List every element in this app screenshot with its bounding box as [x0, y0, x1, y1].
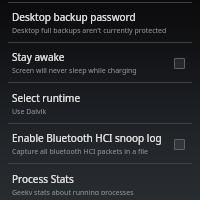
button[interactable]: Enable Bluetooth HCI snoop log [0, 126, 200, 162]
button[interactable]: Desktop backup password [0, 5, 200, 41]
staticText: Desktop full backups aren't currently pr… [12, 26, 167, 36]
staticText: Geeky stats about running processes [12, 188, 134, 195]
staticText: Process Stats [12, 172, 74, 186]
button[interactable]: Toggle Enable Bluetooth HCI snoop log [168, 139, 190, 150]
button[interactable]: Select runtime [0, 86, 200, 122]
staticText: Desktop backup password [12, 10, 136, 24]
button[interactable]: Toggle Stay awake [168, 58, 190, 69]
staticText: Select runtime [12, 91, 81, 105]
staticText: Use Dalvik [12, 107, 47, 117]
button[interactable]: Process Stats [0, 167, 200, 200]
button[interactable]: Stay awake [0, 45, 200, 81]
staticText: Enable Bluetooth HCI snoop log [12, 131, 162, 145]
staticText: Stay awake [12, 50, 65, 64]
staticText: Capture all bluetooth HCI packets in a f… [12, 147, 148, 157]
staticText: Screen will never sleep while charging [12, 66, 137, 76]
